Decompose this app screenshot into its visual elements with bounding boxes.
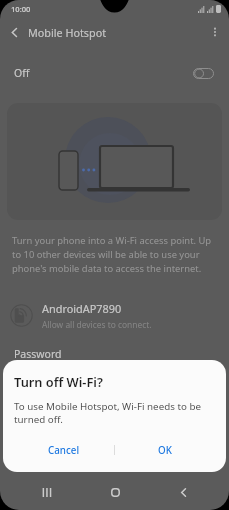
button[interactable]: Password — [0, 334, 229, 374]
staticText: Mobile Hotspot — [28, 25, 107, 40]
button[interactable]: OK — [115, 436, 215, 464]
staticText: 10:00 — [11, 4, 31, 14]
button[interactable]: Off — [0, 53, 229, 93]
staticText: Turn off Wi-Fi? — [14, 373, 103, 390]
staticText: Turn your phone into a Wi-Fi access poin… — [12, 234, 218, 275]
staticText: To use Mobile Hotspot, Wi-Fi needs to be… — [14, 400, 215, 426]
button[interactable]: Home — [93, 474, 137, 510]
button[interactable]: Recent apps — [24, 474, 68, 510]
button[interactable]: Navigate up — [0, 18, 28, 46]
button[interactable]: More options — [201, 18, 229, 46]
staticText: Cancel — [48, 444, 80, 457]
staticText: Off — [14, 66, 30, 80]
staticText: Password — [14, 347, 62, 361]
button[interactable]: Back — [161, 474, 205, 510]
staticText: OK — [158, 444, 172, 457]
button[interactable]: AndroidAP7890 — [0, 293, 229, 337]
button[interactable]: Cancel — [14, 436, 114, 464]
staticText: Allow all devices to connect. — [42, 319, 152, 330]
staticText: AndroidAP7890 — [42, 301, 122, 316]
